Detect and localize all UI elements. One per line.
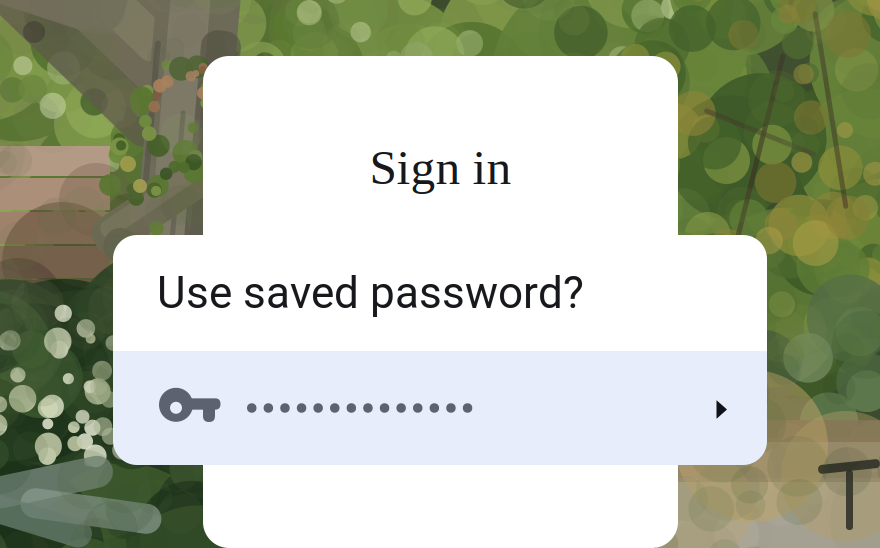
staticText: Sign in [369, 140, 511, 195]
staticText: Use saved password? [157, 267, 584, 319]
button[interactable] [113, 351, 767, 465]
